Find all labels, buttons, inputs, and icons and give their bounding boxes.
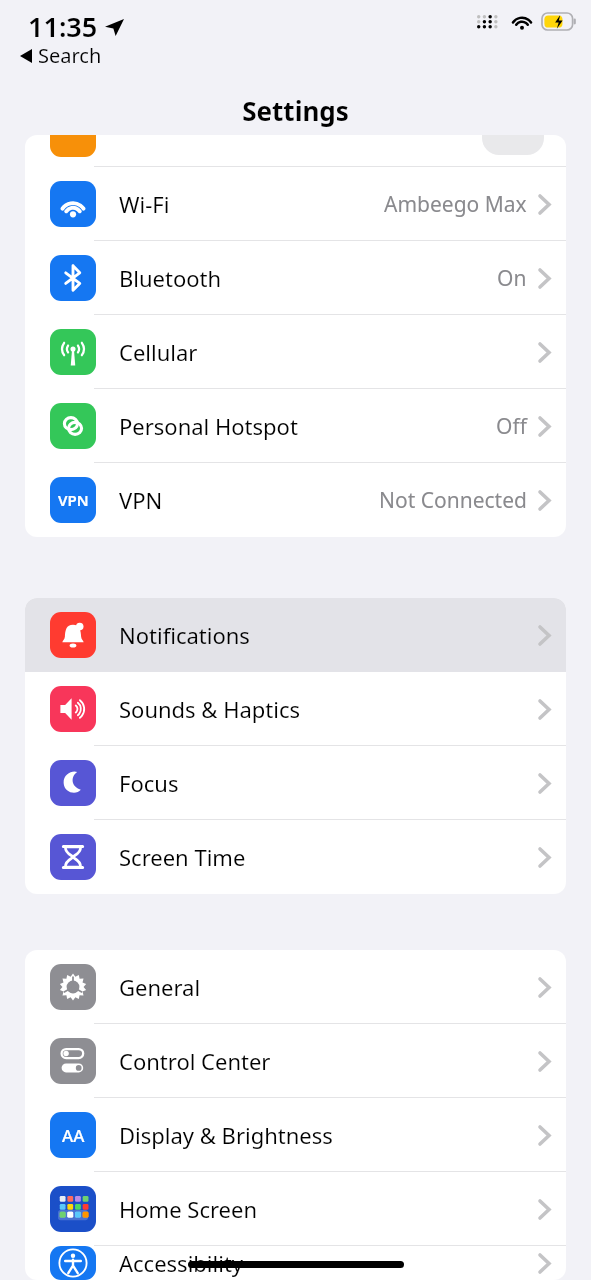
- staticText: Control Center: [119, 1046, 271, 1076]
- button[interactable]: Personal Hotspot: [25, 389, 566, 463]
- staticText: On: [497, 264, 527, 293]
- staticText: Off: [496, 412, 527, 441]
- button[interactable]: AA: [25, 1098, 566, 1172]
- button[interactable]: Notifications: [25, 598, 566, 672]
- staticText: Home Screen: [119, 1194, 258, 1224]
- staticText: Wi-Fi: [119, 189, 170, 219]
- staticText: Search: [38, 42, 102, 69]
- staticText: Bluetooth: [119, 263, 222, 293]
- staticText: Not Connected: [379, 486, 527, 515]
- staticText: Cellular: [119, 337, 198, 367]
- staticText: Screen Time: [119, 842, 246, 872]
- button[interactable]: Accessibility: [25, 1246, 566, 1280]
- button[interactable]: Home Screen: [25, 1172, 566, 1246]
- staticText: Notifications: [119, 620, 250, 650]
- button[interactable]: Cellular: [25, 315, 566, 389]
- button[interactable]: Bluetooth: [25, 241, 566, 315]
- staticText: Settings: [0, 93, 591, 128]
- staticText: Display & Brightness: [119, 1120, 333, 1150]
- button[interactable]: Wi-Fi: [25, 167, 566, 241]
- staticText: Focus: [119, 768, 179, 798]
- button[interactable]: Control Center: [25, 1024, 566, 1098]
- button[interactable]: Sounds & Haptics: [25, 672, 566, 746]
- staticText: AA: [62, 1124, 85, 1147]
- staticText: VPN: [58, 490, 89, 510]
- button[interactable]: Focus: [25, 746, 566, 820]
- button[interactable]: Screen Time: [25, 820, 566, 894]
- staticText: Sounds & Haptics: [119, 694, 301, 724]
- button[interactable]: VPN: [25, 463, 566, 537]
- button[interactable]: Search: [16, 38, 106, 73]
- staticText: 11:35: [28, 8, 98, 45]
- staticText: VPN: [119, 485, 163, 515]
- staticText: Accessibility: [119, 1248, 244, 1278]
- staticText: Ambeego Max: [384, 190, 527, 219]
- button[interactable]: General: [25, 950, 566, 1024]
- staticText: General: [119, 972, 201, 1002]
- staticText: Personal Hotspot: [119, 411, 298, 441]
